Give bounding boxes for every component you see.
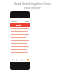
button[interactable] [10,27,30,30]
button[interactable] [10,48,30,51]
button[interactable] [10,39,30,42]
button[interactable] [10,30,30,33]
button[interactable] [10,36,30,39]
staticText: your phone [24,6,41,10]
button[interactable] [10,45,30,48]
staticText: Read Gmail together from [14,2,51,6]
button[interactable] [10,51,30,54]
button[interactable] [10,33,30,36]
button[interactable]: Tab 1 [11,58,14,61]
button[interactable]: Tab 4 [22,58,25,61]
button[interactable]: Tab 3 [19,58,22,61]
button[interactable] [10,42,30,45]
button[interactable]: Tab 2 [15,58,18,61]
button[interactable]: Tab 5 [26,58,29,61]
